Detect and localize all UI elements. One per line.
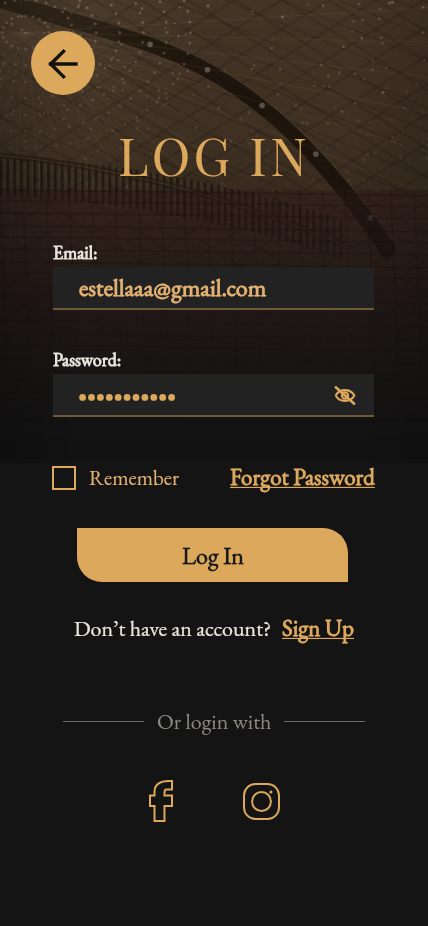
staticText: Or login with bbox=[157, 707, 272, 736]
button[interactable]: Sign Up bbox=[282, 613, 354, 643]
button[interactable]: Login with Facebook bbox=[137, 777, 185, 825]
staticText: Password: bbox=[53, 348, 122, 371]
staticText: estellaaa@gmail.com bbox=[79, 272, 267, 303]
button[interactable]: Login with Instagram bbox=[237, 777, 285, 825]
button[interactable]: Forgot Password bbox=[230, 462, 375, 492]
button[interactable]: Show password bbox=[53, 374, 374, 415]
staticText: LOG IN bbox=[0, 120, 428, 189]
staticText: Don’t have an account? bbox=[74, 614, 272, 643]
button[interactable]: estellaaa@gmail.com bbox=[53, 267, 374, 308]
staticText: Email: bbox=[53, 241, 98, 264]
button[interactable]: Log In bbox=[77, 528, 348, 582]
button[interactable]: Show password bbox=[331, 381, 359, 409]
staticText: Log In bbox=[182, 540, 244, 571]
button[interactable]: Remember bbox=[53, 464, 180, 491]
staticText: Remember bbox=[89, 464, 180, 491]
button[interactable]: Back bbox=[31, 31, 95, 95]
